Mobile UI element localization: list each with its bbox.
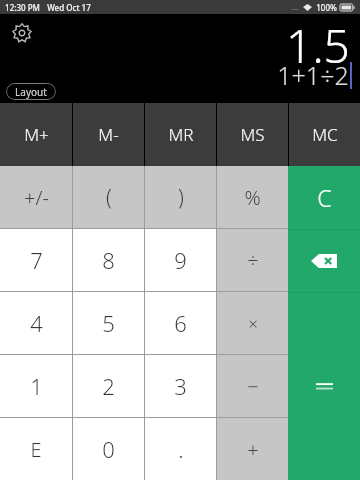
button[interactable]: M-: [73, 103, 144, 166]
staticText: (: [106, 183, 112, 212]
button[interactable]: .: [145, 418, 216, 480]
staticText: 3: [174, 371, 187, 401]
button[interactable]: M+: [0, 103, 72, 166]
staticText: Layout: [15, 85, 47, 99]
button[interactable]: −: [217, 355, 288, 417]
button[interactable]: 8: [73, 229, 144, 291]
button[interactable]: 9: [145, 229, 216, 291]
button[interactable]: 6: [145, 292, 216, 354]
staticText: 1.5: [286, 14, 350, 77]
staticText: 1: [30, 371, 43, 401]
staticText: .: [178, 434, 184, 464]
staticText: +/-: [24, 184, 49, 211]
staticText: MS: [240, 123, 265, 146]
button[interactable]: E: [0, 418, 72, 480]
button[interactable]: 4: [0, 292, 72, 354]
staticText: 12:30 PM: [5, 2, 40, 13]
button[interactable]: +/-: [0, 166, 72, 228]
button[interactable]: %: [217, 166, 288, 228]
button[interactable]: Equals: [288, 293, 360, 480]
button[interactable]: 2: [73, 355, 144, 417]
staticText: 4: [30, 308, 43, 338]
staticText: 100%: [316, 2, 337, 13]
button[interactable]: ): [145, 166, 216, 228]
staticText: 9: [174, 245, 187, 275]
staticText: C: [317, 182, 332, 213]
button[interactable]: 1: [0, 355, 72, 417]
button[interactable]: 7: [0, 229, 72, 291]
staticText: MC: [312, 123, 338, 146]
staticText: MR: [168, 123, 194, 146]
button[interactable]: (: [73, 166, 144, 228]
button[interactable]: Settings: [9, 20, 35, 46]
staticText: ÷: [247, 247, 259, 274]
staticText: 2: [102, 371, 115, 401]
staticText: M-: [98, 123, 119, 146]
staticText: 8: [102, 245, 115, 275]
button[interactable]: Backspace: [288, 230, 360, 292]
button[interactable]: 3: [145, 355, 216, 417]
staticText: ....: [291, 3, 299, 13]
staticText: ): [178, 183, 184, 212]
staticText: −: [247, 373, 259, 400]
staticText: 5: [102, 308, 115, 338]
staticText: %: [244, 184, 261, 211]
button[interactable]: 0: [73, 418, 144, 480]
button[interactable]: +: [217, 418, 288, 480]
button[interactable]: 5: [73, 292, 144, 354]
staticText: 0: [102, 434, 115, 464]
button[interactable]: ×: [217, 292, 288, 354]
staticText: ×: [248, 312, 258, 335]
button[interactable]: MC: [289, 103, 360, 166]
staticText: 1+1÷2: [277, 58, 349, 92]
staticText: 7: [30, 245, 43, 275]
staticText: 6: [174, 308, 187, 338]
staticText: +: [247, 436, 259, 463]
button[interactable]: C: [288, 166, 360, 229]
button[interactable]: MS: [217, 103, 288, 166]
button[interactable]: MR: [145, 103, 216, 166]
staticText: M+: [24, 123, 49, 146]
staticText: Wed Oct 17: [47, 2, 91, 13]
button[interactable]: ÷: [217, 229, 288, 291]
staticText: E: [30, 436, 42, 463]
button[interactable]: Layout: [6, 83, 56, 100]
